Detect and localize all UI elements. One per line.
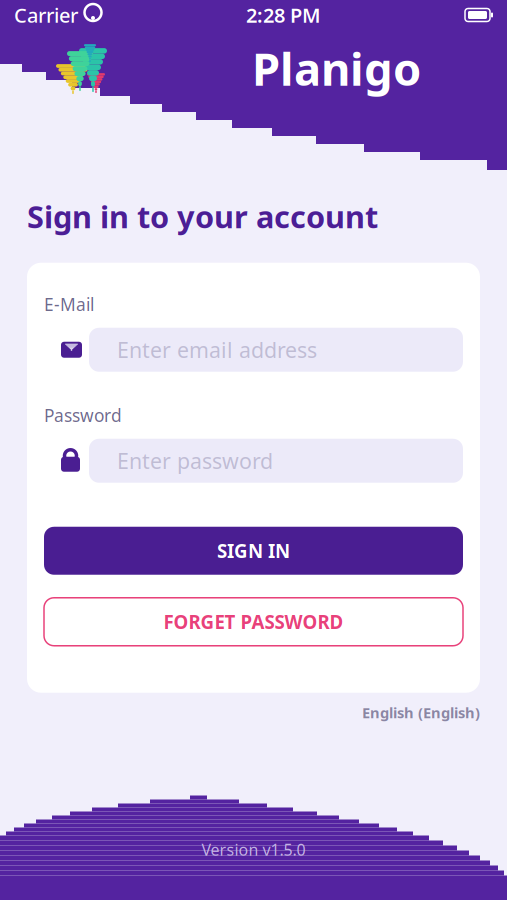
staticText: E-Mail [44,293,94,316]
staticText: English (English) [362,703,480,722]
staticText: Sign in to your account [27,196,378,237]
staticText: FORGET PASSWORD [163,609,343,634]
staticText: Version v1.5.0 [201,839,305,860]
staticText: Carrier [14,2,78,28]
staticText: SIGN IN [217,538,290,563]
staticText: Enter email address [117,336,317,364]
staticText: Planigo [252,38,421,98]
staticText: Password [44,404,122,427]
button[interactable]: FORGET PASSWORD [44,598,463,646]
staticText: Enter password [117,447,273,475]
button[interactable]: SIGN IN [44,527,463,575]
staticText: 2:28 PM [246,2,321,28]
